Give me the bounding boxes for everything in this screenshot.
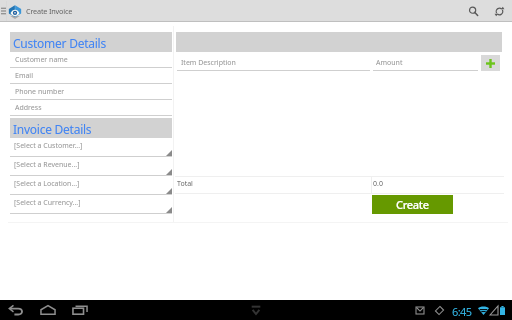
- button[interactable]: Recents: [66, 300, 94, 320]
- staticText: [Select a Currency...]: [14, 198, 81, 208]
- staticText: [Select a Location...]: [14, 179, 80, 189]
- staticText: Item Description: [181, 58, 236, 68]
- staticText: Total: [177, 179, 193, 189]
- staticText: Customer Details: [13, 35, 106, 51]
- button[interactable]: App: [7, 3, 22, 19]
- button[interactable]: Search: [460, 0, 486, 22]
- staticText: Create Invoice: [26, 6, 73, 16]
- button[interactable]: [Select a Currency...]: [10, 194, 172, 214]
- button[interactable]: Hide keyboard: [245, 300, 267, 320]
- staticText: [Select a Customer...]: [14, 141, 83, 151]
- button[interactable]: Item Description: [177, 55, 370, 71]
- staticText: Create: [396, 197, 429, 212]
- button[interactable]: Back: [2, 300, 30, 320]
- staticText: Address: [15, 103, 42, 113]
- button[interactable]: Menu: [0, 0, 7, 22]
- button[interactable]: Create: [372, 195, 453, 214]
- button[interactable]: [Select a Revenue...]: [10, 156, 172, 176]
- button[interactable]: Address: [10, 100, 172, 116]
- button[interactable]: [Select a Location...]: [10, 175, 172, 195]
- button[interactable]: [Select a Customer...]: [10, 137, 172, 157]
- button[interactable]: Refresh: [486, 0, 512, 22]
- button[interactable]: Home: [34, 300, 62, 320]
- button[interactable]: Customer name: [10, 52, 172, 68]
- staticText: Invoice Details: [13, 121, 92, 137]
- button[interactable]: Email: [10, 68, 172, 84]
- staticText: Amount: [376, 58, 403, 68]
- staticText: 6:45: [452, 304, 472, 319]
- staticText: 0.0: [373, 179, 383, 189]
- staticText: Email: [15, 71, 33, 81]
- button[interactable]: Phone number: [10, 84, 172, 100]
- staticText: Customer name: [15, 55, 68, 65]
- button[interactable]: Amount: [373, 55, 478, 71]
- button[interactable]: Add item: [481, 55, 500, 71]
- staticText: [Select a Revenue...]: [14, 160, 80, 170]
- staticText: Phone number: [15, 87, 65, 97]
